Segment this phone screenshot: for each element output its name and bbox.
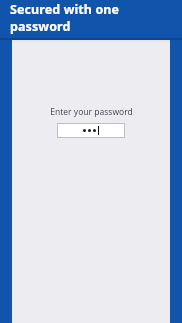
staticText: Secured with one password (10, 1, 182, 35)
button[interactable] (57, 123, 125, 138)
staticText: Enter your password (50, 106, 133, 118)
